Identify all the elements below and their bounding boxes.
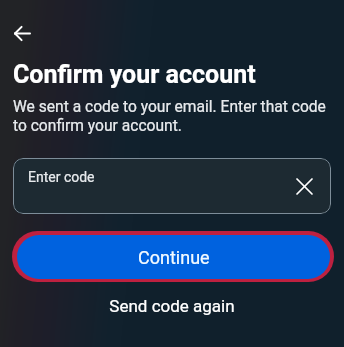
button[interactable]: Clear text [288,170,320,202]
button[interactable]: Continue [12,231,334,282]
staticText: Continue [138,247,210,268]
staticText: Confirm your account [13,60,256,89]
staticText: Send code again [109,296,235,316]
button[interactable]: Send code again [0,291,344,321]
button[interactable]: Back [3,14,41,52]
staticText: We sent a code to your email. Enter that… [13,98,326,135]
button[interactable]: Enter code [13,158,331,214]
staticText: Enter code [28,169,95,185]
